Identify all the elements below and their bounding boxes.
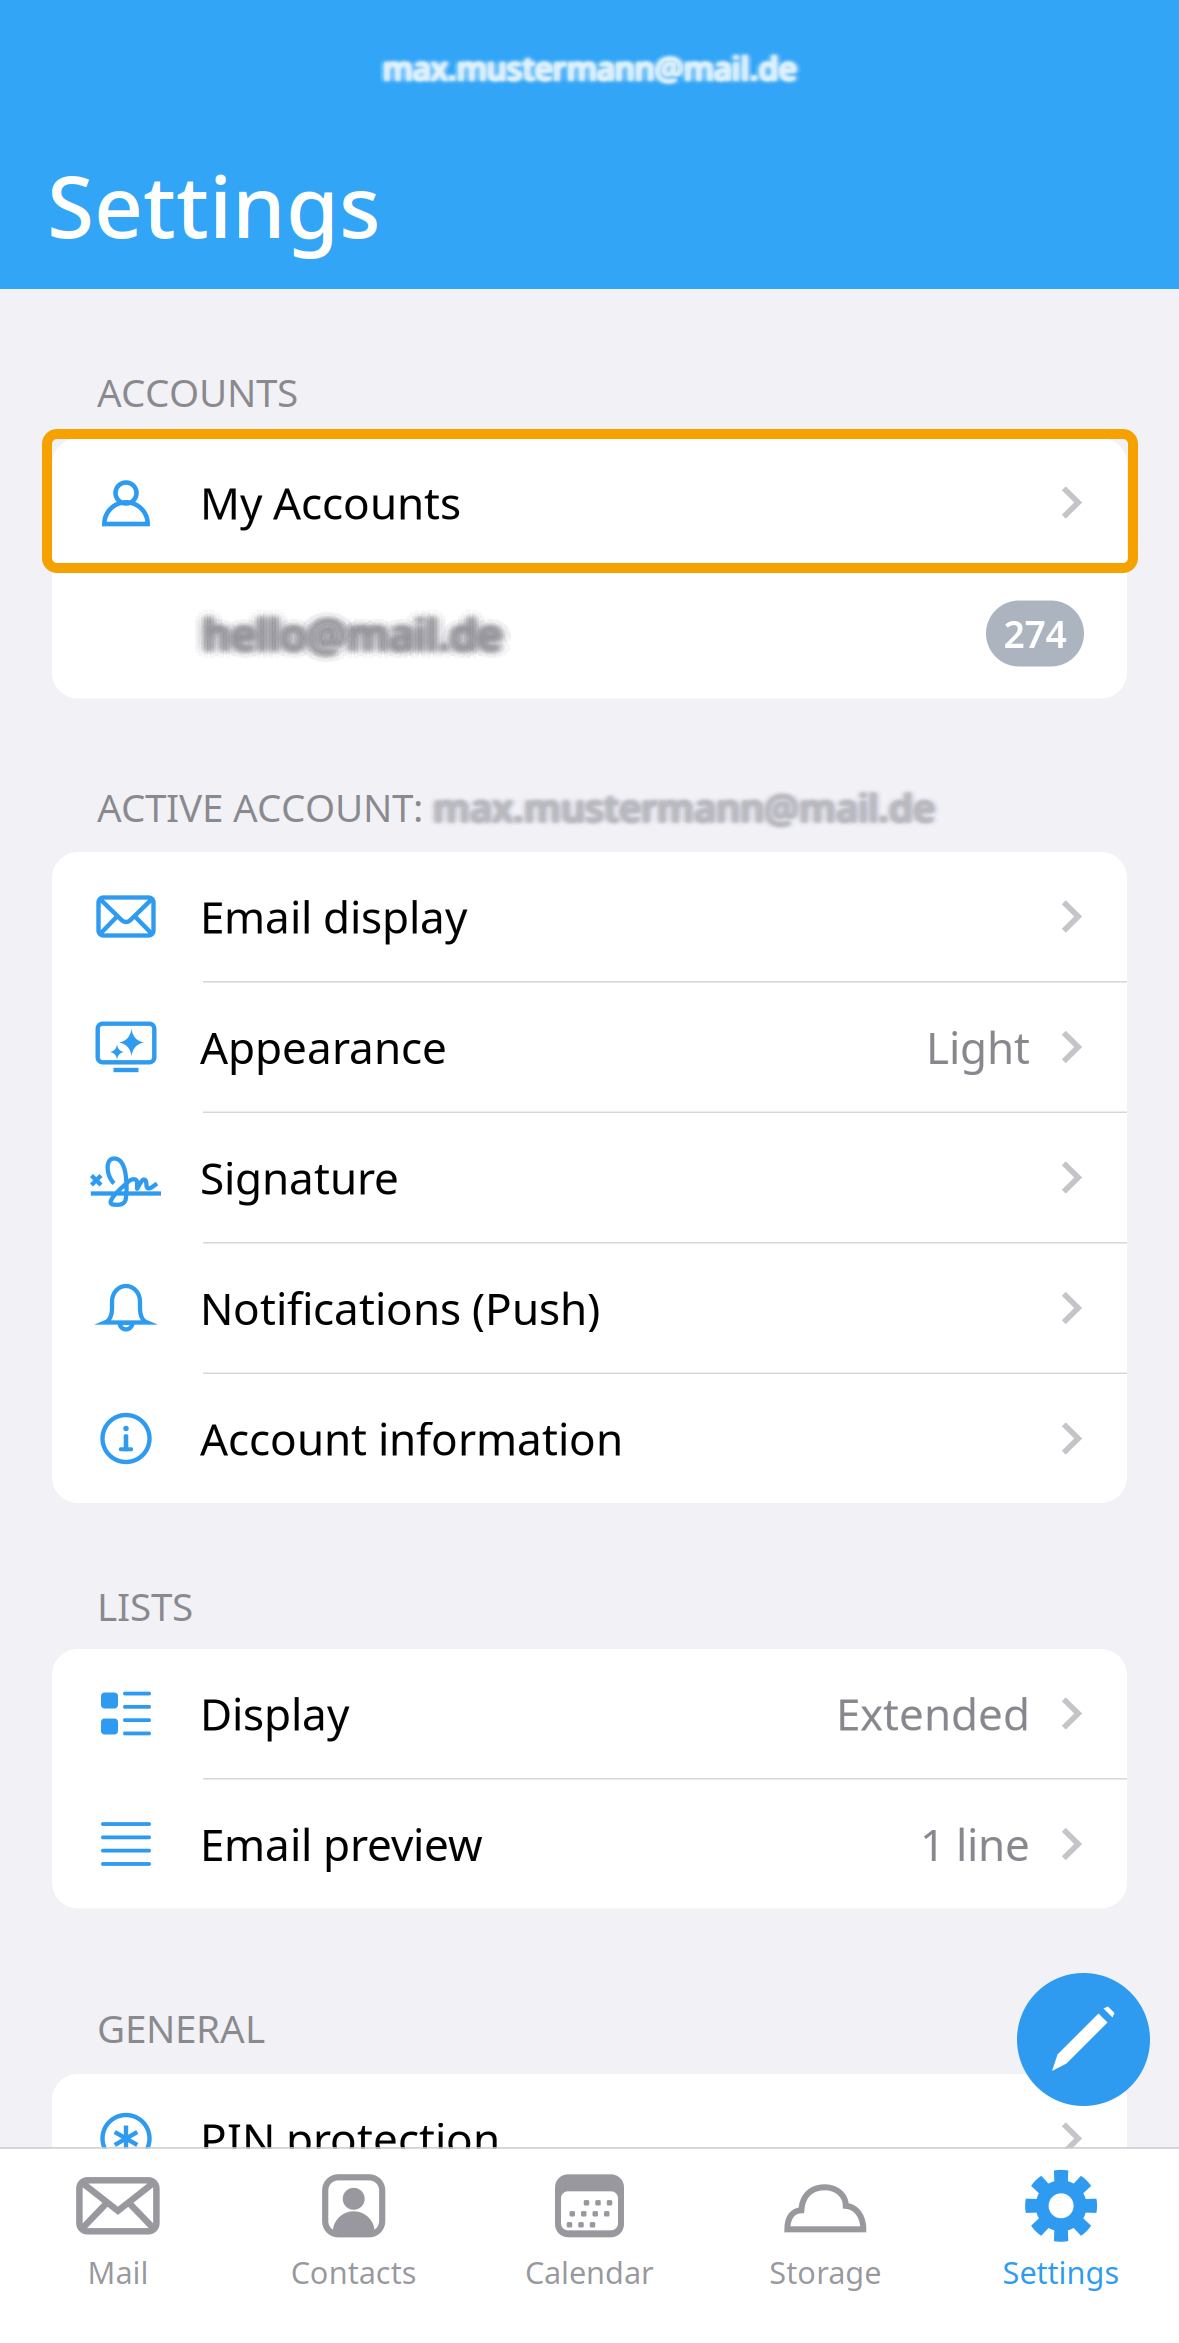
staticText: max.mustermann@mail.de <box>422 782 934 834</box>
staticText: max.mustermann@mail.de <box>421 782 933 833</box>
staticText: max.mustermann@mail.de <box>425 779 937 831</box>
button[interactable]: My Accounts <box>52 438 1127 567</box>
staticText: hello@mail.de <box>211 599 510 657</box>
staticText: Account information <box>200 1409 623 1468</box>
button[interactable]: hello@mail.de <box>52 568 1127 698</box>
staticText: max.mustermann@mail.de <box>384 43 798 85</box>
staticText: max.mustermann@mail.de <box>428 778 940 829</box>
staticText: max.mustermann@mail.de <box>383 46 797 88</box>
button[interactable]: Compose <box>1017 1973 1150 2106</box>
staticText: max.mustermann@mail.de <box>422 781 934 832</box>
staticText: max.mustermann@mail.de <box>420 780 932 831</box>
staticText: Contacts <box>291 2252 417 2292</box>
staticText: hello@mail.de <box>200 605 499 663</box>
staticText: max.mustermann@mail.de <box>423 784 935 835</box>
staticText: max.mustermann@mail.de <box>422 780 934 831</box>
staticText: max.mustermann@mail.de <box>385 46 799 88</box>
staticText: max.mustermann@mail.de <box>385 48 799 90</box>
staticText: max.mustermann@mail.de <box>381 49 795 91</box>
staticText: max.mustermann@mail.de <box>382 47 796 89</box>
staticText: max.mustermann@mail.de <box>378 44 792 86</box>
staticText: max.mustermann@mail.de <box>382 45 796 87</box>
staticText: max.mustermann@mail.de <box>386 44 800 86</box>
staticText: hello@mail.de <box>200 612 499 670</box>
staticText: max.mustermann@mail.de <box>386 50 800 92</box>
staticText: max.mustermann@mail.de <box>377 46 791 88</box>
button[interactable]: More <box>52 2204 1127 2333</box>
staticText: max.mustermann@mail.de <box>381 47 795 89</box>
staticText: max.mustermann@mail.de <box>388 46 802 88</box>
staticText: max.mustermann@mail.de <box>382 47 796 89</box>
staticText: Calendar <box>525 2252 654 2292</box>
staticText: ACTIVE ACCOUNT: <box>97 781 423 833</box>
button[interactable]: Storage <box>707 2148 943 2343</box>
staticText: More <box>200 2240 309 2298</box>
staticText: hello@mail.de <box>205 606 504 664</box>
staticText: hello@mail.de <box>203 600 502 658</box>
staticText: max.mustermann@mail.de <box>384 45 798 87</box>
staticText: max.mustermann@mail.de <box>385 47 799 89</box>
button[interactable]: Notifications (Push) <box>52 1243 1127 1372</box>
staticText: hello@mail.de <box>203 606 502 665</box>
staticText: hello@mail.de <box>200 597 499 655</box>
staticText: max.mustermann@mail.de <box>426 780 938 831</box>
staticText: hello@mail.de <box>200 604 499 662</box>
staticText: hello@mail.de <box>206 612 505 670</box>
button[interactable]: Calendar <box>472 2148 707 2343</box>
staticText: hello@mail.de <box>195 599 494 657</box>
staticText: max.mustermann@mail.de <box>380 46 794 88</box>
staticText: max.mustermann@mail.de <box>426 781 938 833</box>
staticText: hello@mail.de <box>203 602 502 661</box>
staticText: max.mustermann@mail.de <box>383 48 797 90</box>
staticText: max.mustermann@mail.de <box>425 783 937 835</box>
staticText: Appearance <box>200 1018 447 1076</box>
staticText: max.mustermann@mail.de <box>384 47 798 90</box>
staticText: max.mustermann@mail.de <box>424 782 936 833</box>
staticText: max.mustermann@mail.de <box>418 778 930 829</box>
staticText: Settings <box>1003 2252 1120 2292</box>
staticText: hello@mail.de <box>195 610 494 668</box>
button[interactable]: Appearance <box>52 982 1127 1111</box>
button[interactable]: Email display <box>52 852 1127 981</box>
button[interactable]: Signature <box>52 1113 1127 1242</box>
staticText: Display <box>200 1684 349 1743</box>
button[interactable]: Display <box>52 1649 1127 1778</box>
staticText: max.mustermann@mail.de <box>423 782 935 834</box>
staticText: Email display <box>200 887 467 946</box>
staticText: Notifications (Push) <box>200 1279 600 1337</box>
staticText: hello@mail.de <box>203 604 502 663</box>
staticText: ACCOUNTS <box>97 366 298 418</box>
staticText: hello@mail.de <box>211 610 510 668</box>
staticText: max.mustermann@mail.de <box>426 782 938 834</box>
staticText: 1 line <box>920 1815 1030 1873</box>
button[interactable]: Contacts <box>236 2148 472 2343</box>
staticText: Storage <box>769 2252 881 2292</box>
staticText: hello@mail.de <box>214 606 513 665</box>
staticText: max.mustermann@mail.de <box>423 779 935 830</box>
staticText: max.mustermann@mail.de <box>382 48 796 90</box>
staticText: hello@mail.de <box>192 602 491 661</box>
staticText: max.mustermann@mail.de <box>382 48 796 90</box>
staticText: max.mustermann@mail.de <box>377 48 791 90</box>
button[interactable]: Account information <box>52 1374 1127 1503</box>
staticText: max.mustermann@mail.de <box>425 786 937 837</box>
staticText: max.mustermann@mail.de <box>423 780 935 831</box>
staticText: max.mustermann@mail.de <box>429 782 941 834</box>
staticText: max.mustermann@mail.de <box>381 45 795 87</box>
staticText: hello@mail.de <box>202 602 501 661</box>
staticText: hello@mail.de <box>197 604 496 663</box>
staticText: hello@mail.de <box>208 602 507 661</box>
staticText: PIN protection <box>200 2109 500 2168</box>
staticText: max.mustermann@mail.de <box>383 46 797 88</box>
button[interactable]: Email preview <box>52 1779 1127 1908</box>
button[interactable]: Settings <box>943 2148 1179 2343</box>
staticText: max.mustermann@mail.de <box>425 781 937 833</box>
staticText: max.mustermann@mail.de <box>421 779 933 831</box>
staticText: Email preview <box>200 1815 483 1873</box>
staticText: max.mustermann@mail.de <box>429 780 941 831</box>
staticText: max.mustermann@mail.de <box>425 781 937 832</box>
button[interactable]: PIN protection <box>52 2074 1127 2203</box>
staticText: hello@mail.de <box>198 606 497 665</box>
staticText: max.mustermann@mail.de <box>421 781 933 832</box>
button[interactable]: Mail <box>0 2148 236 2343</box>
